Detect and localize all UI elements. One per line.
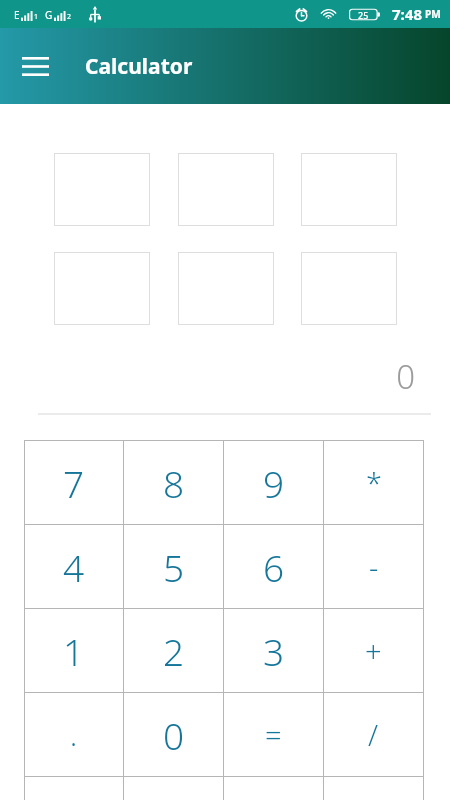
- staticText: Calculator: [85, 52, 193, 81]
- button[interactable]: Memory slot 3: [301, 153, 397, 226]
- staticText: =: [265, 715, 282, 754]
- staticText: 0: [0, 354, 415, 399]
- button[interactable]: =: [224, 693, 323, 776]
- button[interactable]: .: [25, 693, 123, 776]
- button[interactable]: /: [324, 693, 423, 776]
- staticText: 1: [63, 626, 85, 676]
- button[interactable]: -: [324, 525, 423, 608]
- staticText: 7:48: [392, 4, 422, 24]
- button[interactable]: 1: [25, 609, 123, 692]
- button[interactable]: 5: [124, 525, 223, 608]
- staticText: 7: [63, 458, 85, 508]
- button[interactable]: 3: [224, 609, 323, 692]
- staticText: 5: [163, 542, 185, 592]
- staticText: 4: [63, 542, 85, 592]
- button[interactable]: 2: [124, 609, 223, 692]
- staticText: 9: [263, 458, 285, 508]
- staticText: 2: [163, 626, 185, 676]
- staticText: -: [369, 547, 379, 586]
- button[interactable]: Memory slot 2: [178, 153, 274, 226]
- button[interactable]: 0: [124, 693, 223, 776]
- button[interactable]: 8: [124, 441, 223, 524]
- staticText: 6: [263, 542, 285, 592]
- button[interactable]: Memory slot 6: [301, 252, 397, 325]
- button[interactable]: +: [324, 609, 423, 692]
- other: USB connected: [89, 6, 101, 23]
- staticText: 8: [163, 458, 185, 508]
- button[interactable]: 6: [224, 525, 323, 608]
- other: Wi-Fi: [321, 8, 336, 20]
- staticText: PM: [425, 7, 441, 21]
- button[interactable]: 4: [25, 525, 123, 608]
- staticText: 1: [34, 12, 39, 22]
- staticText: .: [70, 715, 78, 754]
- staticText: *: [366, 463, 382, 502]
- button[interactable]: Memory slot 4: [54, 252, 150, 325]
- button[interactable]: *: [324, 441, 423, 524]
- staticText: 25: [358, 9, 369, 21]
- other: Battery 25 percent: [349, 7, 381, 22]
- staticText: 0: [163, 710, 185, 760]
- staticText: E: [14, 8, 20, 22]
- button[interactable]: Open navigation drawer: [12, 43, 58, 89]
- button[interactable]: Memory slot 5: [178, 252, 274, 325]
- button[interactable]: 9: [224, 441, 323, 524]
- button[interactable]: 7: [25, 441, 123, 524]
- staticText: /: [368, 715, 379, 754]
- staticText: G: [45, 8, 53, 22]
- staticText: +: [365, 631, 382, 670]
- staticText: 3: [263, 626, 285, 676]
- button[interactable]: Memory slot 1: [54, 153, 150, 226]
- other: Alarm set: [294, 7, 309, 22]
- staticText: 2: [67, 12, 72, 22]
